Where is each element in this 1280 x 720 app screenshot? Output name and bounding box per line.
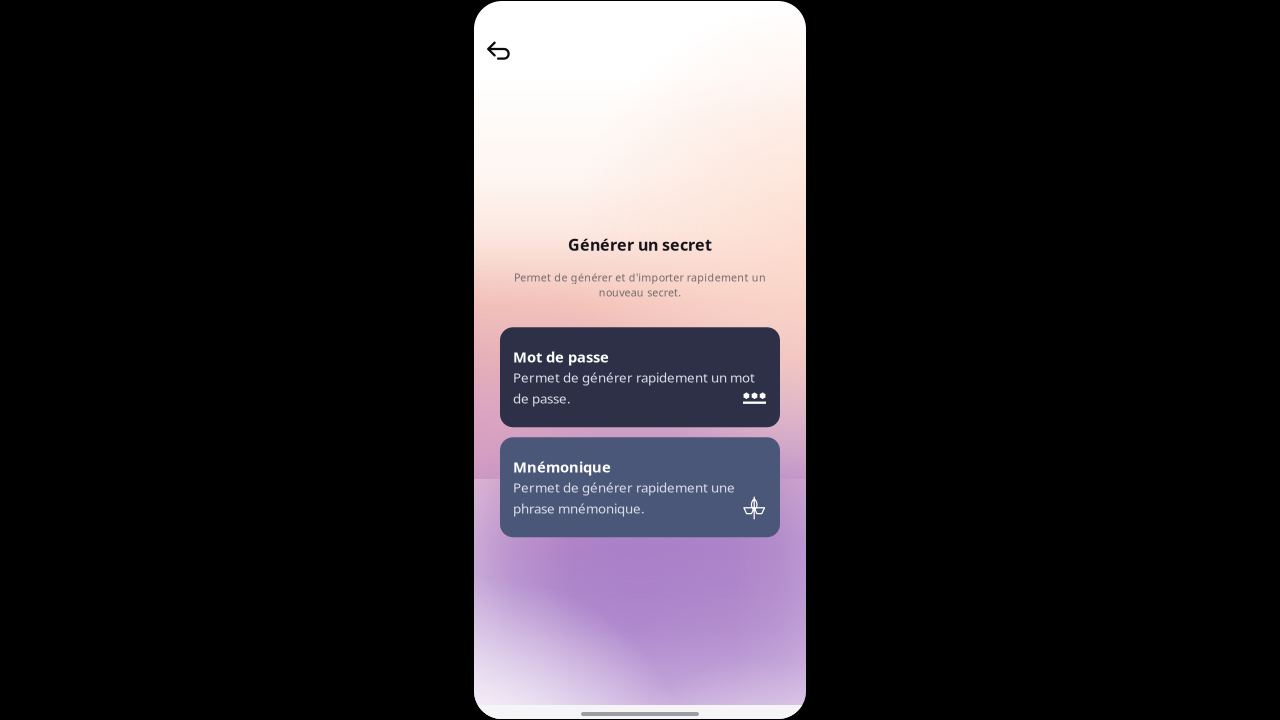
- staticText: Mot de passe: [513, 347, 609, 366]
- staticText: Générer un secret: [568, 234, 712, 255]
- staticText: Permet de générer rapidement une: [513, 478, 735, 496]
- button[interactable]: Mot de passe: [500, 327, 780, 427]
- staticText: nouveau secret.: [599, 285, 681, 299]
- staticText: de passe.: [513, 389, 571, 407]
- staticText: Permet de générer rapidement un mot: [513, 368, 755, 386]
- staticText: Mnémonique: [513, 457, 611, 476]
- button[interactable]: Mnémonique: [500, 437, 780, 537]
- staticText: Permet de générer et d'importer rapideme…: [514, 270, 766, 284]
- button[interactable]: Back: [477, 31, 521, 71]
- staticText: phrase mnémonique.: [513, 499, 645, 517]
